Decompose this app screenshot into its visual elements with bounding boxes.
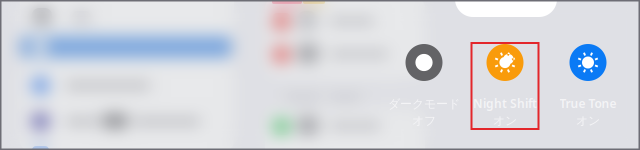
button[interactable]: Night Shift, on [467,44,543,128]
staticText: オフ [412,113,436,128]
staticText: True Tone [559,95,616,111]
button[interactable]: True Tone, on [550,44,626,128]
staticText: オン [576,113,600,128]
button[interactable]: Dark Mode, off [386,44,462,128]
staticText: オン [493,113,517,128]
staticText: Night Shift [473,95,537,111]
staticText: ダークモード [388,96,460,111]
